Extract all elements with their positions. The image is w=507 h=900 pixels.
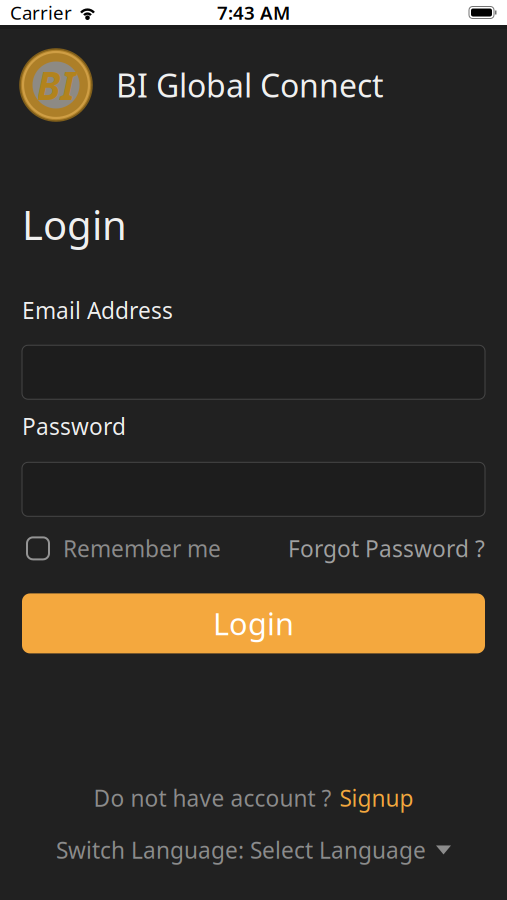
button[interactable]: Switch Language: Select Language [56, 835, 451, 865]
staticText: BI Global Connect [116, 64, 384, 106]
staticText: Signup [339, 783, 413, 813]
staticText: BI [36, 59, 75, 111]
staticText: Switch Language: Select Language [56, 835, 426, 865]
staticText: Login [22, 198, 127, 251]
staticText: Login [213, 603, 294, 644]
staticText: Email Address [22, 295, 173, 325]
button[interactable] [22, 462, 485, 516]
staticText: Remember me [63, 533, 221, 563]
button[interactable]: Login [22, 593, 485, 653]
staticText: 7:43 AM [217, 0, 290, 25]
staticText: Do not have account ? [93, 783, 331, 813]
button[interactable]: Remember me [22, 533, 221, 563]
staticText: Carrier [10, 0, 72, 25]
button[interactable]: Forgot Password ? [288, 533, 485, 563]
button[interactable]: Do not have account ? [93, 783, 413, 813]
button[interactable] [22, 345, 485, 399]
staticText: Forgot Password ? [288, 533, 485, 563]
staticText: Password [22, 411, 126, 441]
